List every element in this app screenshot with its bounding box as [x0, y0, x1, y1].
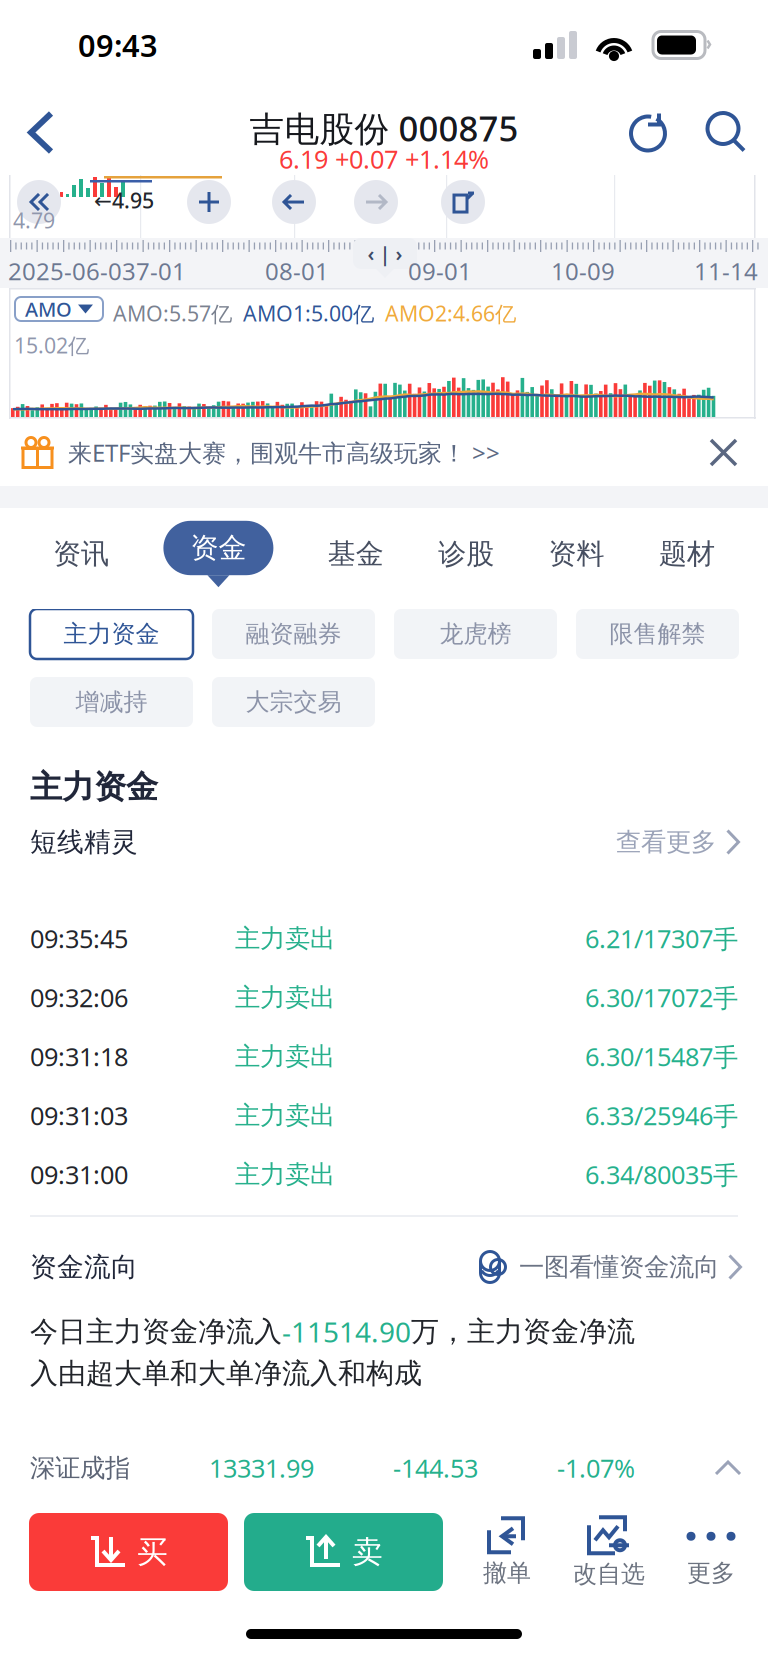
staticText: 10-09 — [551, 255, 615, 287]
button[interactable]: 资讯 — [53, 527, 109, 581]
button[interactable]: 基金 — [328, 527, 384, 581]
button[interactable]: 诊股 — [438, 527, 494, 581]
button[interactable]: 限售解禁 — [576, 609, 739, 659]
staticText: 万，主力资金净流 — [411, 1314, 635, 1349]
staticText: 融资融券 — [245, 619, 341, 649]
staticText: 题材 — [659, 537, 715, 571]
staticText: 一图看懂资金流向 — [519, 1251, 719, 1282]
staticText: ←4.95 — [94, 186, 154, 214]
button[interactable]: 增减持 — [30, 677, 193, 727]
staticText: 6.21/17307手 — [585, 922, 738, 955]
staticText: AMO1:5.00亿 — [243, 299, 374, 327]
staticText: AMO:5.57亿 — [113, 299, 232, 327]
staticText: 买 — [137, 1533, 168, 1571]
button[interactable]: 大宗交易 — [212, 677, 375, 727]
button[interactable]: Refresh — [612, 90, 686, 175]
button[interactable]: 题材 — [659, 527, 715, 581]
button[interactable]: 主力资金 — [30, 609, 193, 659]
staticText: 改自选 — [573, 1559, 645, 1589]
staticText: -11514.90 — [282, 1313, 411, 1350]
staticText: 基金 — [328, 537, 384, 571]
staticText: AMO2:4.66亿 — [385, 299, 516, 327]
staticText: 4.79 — [13, 206, 55, 234]
button[interactable]: Zoom in — [187, 180, 231, 224]
staticText: 诊股 — [438, 537, 494, 571]
button[interactable]: Full screen — [441, 180, 485, 224]
button[interactable]: 一图看懂资金流向 — [478, 1251, 768, 1283]
staticText: 大宗交易 — [245, 687, 341, 717]
staticText: 龙虎榜 — [439, 619, 511, 649]
button[interactable]: Pan left — [272, 180, 316, 224]
staticText: 主力卖出 — [235, 1159, 335, 1190]
staticText: 08-01 — [265, 255, 329, 287]
staticText: -1.07% — [557, 1451, 635, 1485]
staticText: 入由超大单和大单净流入和构成 — [30, 1356, 422, 1391]
button[interactable]: 查看更多 — [616, 826, 768, 857]
button[interactable]: 09:31:18 — [0, 1027, 768, 1086]
staticText: 资金流向 — [30, 1251, 138, 1283]
staticText: 来ETF实盘大赛，围观牛市高级玩家！ >> — [68, 437, 500, 468]
staticText: 今日主力资金净流入 — [30, 1314, 282, 1349]
button[interactable]: 来ETF实盘大赛，围观牛市高级玩家！ >> — [0, 419, 768, 486]
button[interactable]: 资料 — [549, 527, 605, 581]
staticText: 资讯 — [53, 537, 109, 571]
staticText: 15.02亿 — [14, 331, 89, 359]
staticText: 6.30/15487手 — [585, 1040, 738, 1073]
staticText: 6.33/25946手 — [585, 1099, 738, 1132]
button[interactable]: 09:31:00 — [0, 1145, 768, 1204]
staticText: 09:43 — [78, 25, 158, 65]
button[interactable]: Back — [0, 90, 82, 175]
staticText: 6.19 +0.07 +1.14% — [279, 142, 489, 176]
staticText: 限售解禁 — [609, 619, 705, 649]
staticText: 主力资金 — [63, 619, 159, 649]
staticText: 查看更多 — [616, 826, 716, 857]
button[interactable]: Pan right — [354, 180, 398, 224]
staticText: AMO — [25, 296, 72, 322]
staticText: 主力卖出 — [235, 1100, 335, 1131]
button[interactable]: 卖 — [244, 1513, 443, 1591]
staticText: 09:31:18 — [30, 1040, 128, 1073]
button[interactable]: 改自选 — [558, 1509, 660, 1595]
staticText: 短线精灵 — [30, 826, 138, 858]
staticText: 13331.99 — [209, 1451, 314, 1485]
staticText: 主力卖出 — [235, 1041, 335, 1072]
staticText: 主力卖出 — [235, 982, 335, 1013]
button[interactable]: 09:32:06 — [0, 968, 768, 1027]
staticText: 09-01 — [408, 255, 472, 287]
button[interactable]: 09:35:45 — [0, 909, 768, 968]
button[interactable]: 09:31:03 — [0, 1086, 768, 1145]
button[interactable]: 资金 — [163, 521, 273, 587]
staticText: 6.34/80035手 — [585, 1158, 738, 1191]
staticText: 吉电股份 000875 — [249, 105, 518, 151]
staticText: ‹ | › — [367, 240, 402, 267]
staticText: 主力卖出 — [235, 923, 335, 954]
staticText: 09:31:00 — [30, 1158, 128, 1191]
button[interactable]: Scroll left — [17, 180, 61, 224]
button[interactable]: 更多 — [660, 1509, 762, 1595]
staticText: -144.53 — [393, 1451, 478, 1485]
staticText: 09:32:06 — [30, 981, 128, 1014]
staticText: 更多 — [687, 1558, 735, 1588]
staticText: 撤单 — [483, 1558, 531, 1588]
staticText: 2025-06-03 — [8, 255, 136, 287]
staticText: 深证成指 — [30, 1452, 130, 1483]
button[interactable]: 撤单 — [456, 1509, 558, 1595]
staticText: 09:35:45 — [30, 922, 128, 955]
button[interactable]: 买 — [29, 1513, 228, 1591]
button[interactable]: 深证成指 — [0, 1437, 768, 1499]
staticText: 7-01 — [136, 255, 186, 287]
staticText: 增减持 — [75, 687, 147, 717]
staticText: 09:31:03 — [30, 1099, 128, 1132]
staticText: 卖 — [352, 1533, 383, 1571]
button[interactable]: 融资融券 — [212, 609, 375, 659]
staticText: 6.30/17072手 — [585, 981, 738, 1014]
staticText: 资金 — [190, 531, 246, 565]
button[interactable]: 龙虎榜 — [394, 609, 557, 659]
staticText: 主力资金 — [30, 767, 158, 807]
staticText: 资料 — [549, 537, 605, 571]
button[interactable]: Search — [686, 90, 768, 175]
staticText: 11-14 — [694, 255, 758, 287]
